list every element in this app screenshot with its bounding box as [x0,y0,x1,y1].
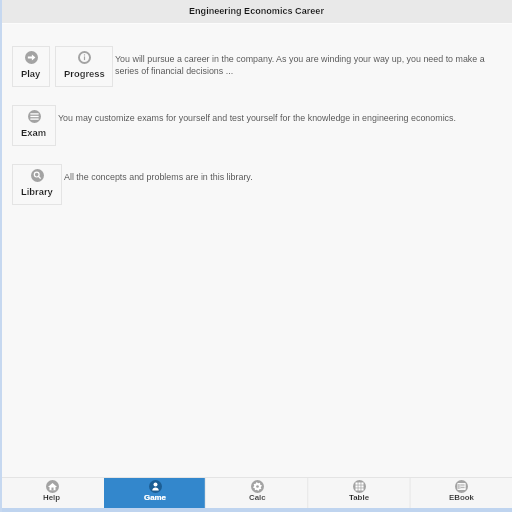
button[interactable]: Library [12,164,62,205]
staticText: Engineering Economics Career [189,6,324,16]
button[interactable]: Game [104,478,205,508]
button[interactable]: Exam [12,105,56,146]
button[interactable]: EBook [411,478,511,508]
staticText: You may customize exams for yourself and… [58,113,456,123]
button[interactable]: Calc [207,478,307,508]
staticText: All the concepts and problems are in thi… [64,172,253,182]
button[interactable]: Help [1,478,102,508]
staticText: Library [21,186,53,197]
staticText: Play [21,68,41,79]
button[interactable]: Play [12,46,50,87]
staticText: Exam [21,127,47,138]
staticText: Calc [249,493,266,502]
button[interactable]: Table [309,478,409,508]
button[interactable]: Progress [55,46,113,87]
staticText: You will pursue a career in the company.… [115,54,492,76]
staticText: Help [43,493,61,502]
staticText: Progress [64,68,105,79]
staticText: Table [349,493,370,502]
staticText: Game [144,493,166,502]
staticText: EBook [449,493,474,502]
